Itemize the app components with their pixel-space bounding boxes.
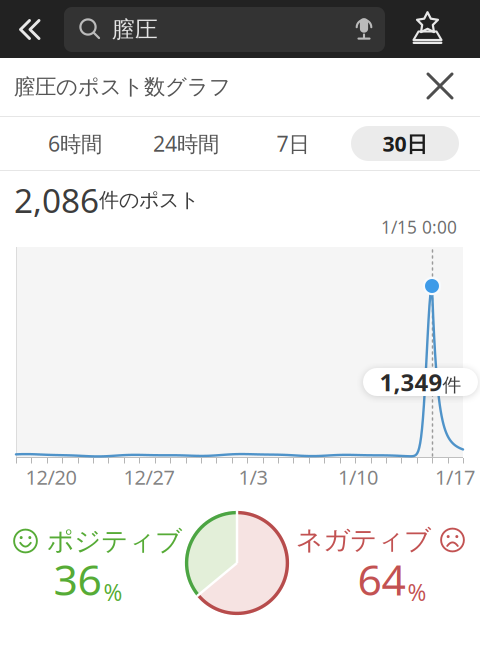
staticText: 12/27 xyxy=(123,464,174,490)
staticText: 6時間 xyxy=(48,129,102,158)
staticText: % xyxy=(103,577,122,607)
button[interactable]: 膣圧 xyxy=(64,7,385,52)
staticText: 7日 xyxy=(276,129,309,158)
staticText: 1/17 xyxy=(435,464,475,490)
button[interactable]: 30日 xyxy=(350,117,460,170)
button[interactable]: 24時間 xyxy=(131,117,241,170)
staticText: 1/15 0:00 xyxy=(381,215,457,238)
staticText: 64 xyxy=(357,551,405,607)
staticText: 24時間 xyxy=(153,129,219,158)
staticText: 膣圧のポスト数グラフ xyxy=(14,74,231,100)
button[interactable]: Back xyxy=(0,0,62,58)
staticText: ポジティブ xyxy=(47,525,182,557)
staticText: 2,086 xyxy=(14,178,99,222)
staticText: ネガティブ xyxy=(296,524,431,556)
button[interactable]: Save search xyxy=(398,0,456,58)
staticText: 1/3 xyxy=(238,464,267,490)
staticText: % xyxy=(407,577,426,607)
staticText: 1,349 xyxy=(379,366,442,398)
staticText: 1/10 xyxy=(338,464,378,490)
button[interactable]: 6時間 xyxy=(20,117,130,170)
staticText: 30日 xyxy=(382,129,427,158)
staticText: 件 xyxy=(442,374,461,396)
button[interactable]: Close xyxy=(410,58,470,116)
button[interactable]: 7日 xyxy=(238,117,348,170)
staticText: 36 xyxy=(53,551,101,607)
staticText: 12/20 xyxy=(25,464,76,490)
staticText: 件のポスト xyxy=(99,188,199,212)
staticText: 膣圧 xyxy=(112,16,158,43)
